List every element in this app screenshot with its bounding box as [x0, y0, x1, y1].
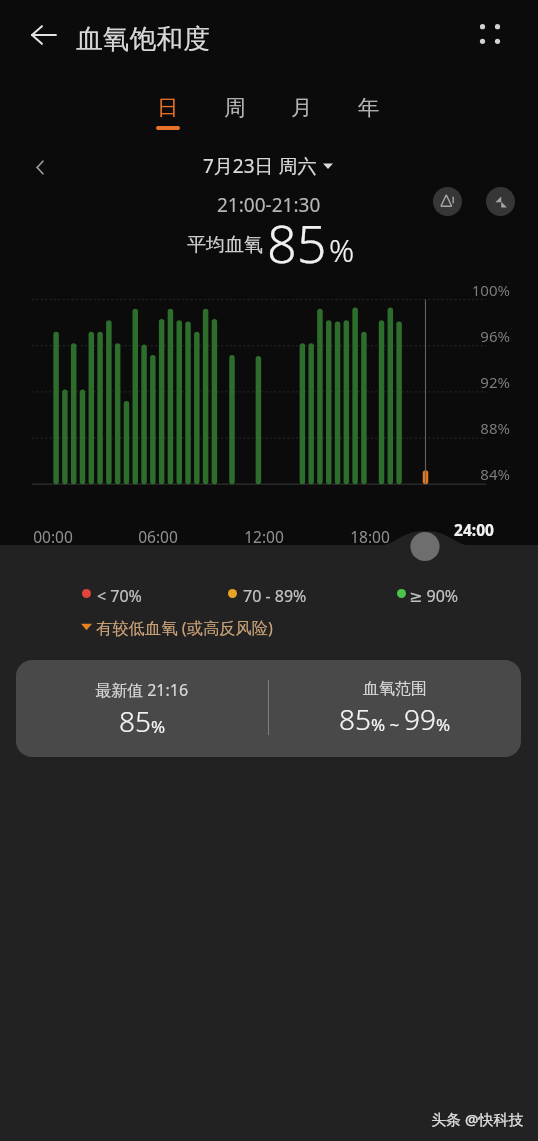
- staticText: 月: [291, 94, 313, 121]
- staticText: 100%: [471, 280, 510, 300]
- button[interactable]: 月: [276, 94, 328, 136]
- staticText: 血氧饱和度: [76, 22, 210, 56]
- staticText: %: [329, 229, 355, 271]
- staticText: 70 - 89%: [243, 585, 307, 607]
- staticText: 84%: [480, 464, 510, 484]
- staticText: < 70%: [97, 585, 142, 607]
- button[interactable]: 日: [142, 94, 194, 136]
- staticText: 年: [358, 94, 380, 121]
- staticText: 21:00-21:30: [217, 192, 321, 218]
- button[interactable]: 周: [209, 94, 261, 136]
- staticText: 00:00: [33, 526, 73, 547]
- staticText: 88%: [480, 418, 510, 438]
- staticText: 92%: [480, 372, 510, 392]
- staticText: 18:00: [350, 526, 390, 547]
- staticText: 平均血氧: [187, 233, 263, 257]
- staticText: 96%: [480, 326, 510, 346]
- staticText: %: [436, 713, 451, 736]
- staticText: 7月23日 周六: [203, 153, 317, 179]
- button[interactable]: More options: [468, 12, 512, 56]
- button[interactable]: Back: [22, 15, 66, 55]
- staticText: 85: [267, 207, 327, 278]
- staticText: 12:00: [244, 526, 284, 547]
- staticText: %: [151, 715, 166, 738]
- staticText: 周: [224, 94, 246, 121]
- button[interactable]: 年: [343, 94, 395, 136]
- staticText: 85: [119, 702, 151, 740]
- button[interactable]: Compare: [486, 187, 515, 216]
- staticText: 血氧范围: [363, 679, 427, 699]
- button[interactable]: Measurement info: [433, 187, 462, 216]
- staticText: 头条 @快科技: [431, 1109, 524, 1129]
- staticText: 最新值 21:16: [95, 679, 189, 701]
- staticText: % ~: [371, 713, 404, 736]
- staticText: 24:00: [454, 519, 494, 540]
- staticText: 99: [404, 700, 436, 738]
- button[interactable]: 最新值 21:16: [16, 660, 521, 757]
- staticText: 有较低血氧 (或高反风险): [96, 617, 273, 639]
- staticText: ≥ 90%: [409, 585, 459, 607]
- staticText: 85: [339, 700, 371, 738]
- staticText: 日: [157, 94, 179, 121]
- button[interactable]: Previous day: [26, 153, 54, 181]
- staticText: 06:00: [138, 526, 178, 547]
- button[interactable]: 7月23日 周六: [203, 153, 333, 179]
